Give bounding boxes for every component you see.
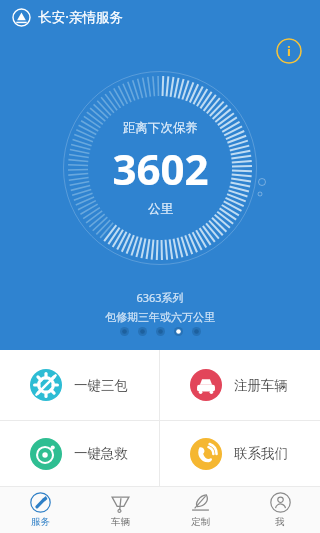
staticText: 注册车辆 xyxy=(234,377,288,394)
button[interactable]: 服务 xyxy=(0,487,80,533)
staticText: 我 xyxy=(275,516,285,528)
staticText: 定制 xyxy=(191,516,210,528)
staticText: 6363系列 xyxy=(136,290,184,305)
staticText: 联系我们 xyxy=(234,445,288,462)
staticText: 公里 xyxy=(148,201,173,217)
button[interactable]: 我 xyxy=(240,487,320,533)
button[interactable]: 一键三包 xyxy=(0,350,159,420)
staticText: i xyxy=(287,42,291,60)
staticText: 包修期三年或六万公里 xyxy=(105,310,215,324)
staticText: 一键三包 xyxy=(74,377,128,394)
button[interactable]: Information xyxy=(276,38,302,64)
button[interactable]: 注册车辆 xyxy=(160,350,320,420)
staticText: 车辆 xyxy=(111,516,130,528)
button[interactable]: 一键急救 xyxy=(0,421,159,486)
staticText: 3602 xyxy=(112,140,209,197)
button[interactable]: 联系我们 xyxy=(160,421,320,486)
button[interactable]: 定制 xyxy=(160,487,240,533)
staticText: 距离下次保养 xyxy=(123,120,198,136)
button[interactable]: 车辆 xyxy=(80,487,160,533)
staticText: 一键急救 xyxy=(74,445,128,462)
staticText: 服务 xyxy=(31,516,50,528)
staticText: 长安·亲情服务 xyxy=(38,8,123,26)
